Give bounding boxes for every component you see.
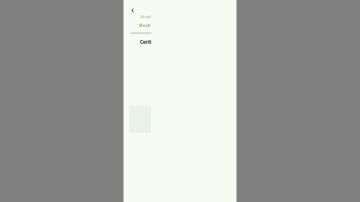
staticText: Certi — [140, 38, 151, 45]
staticText: Stock — [139, 22, 150, 28]
staticText: Model — [140, 14, 151, 19]
button[interactable]: Back — [127, 3, 139, 17]
